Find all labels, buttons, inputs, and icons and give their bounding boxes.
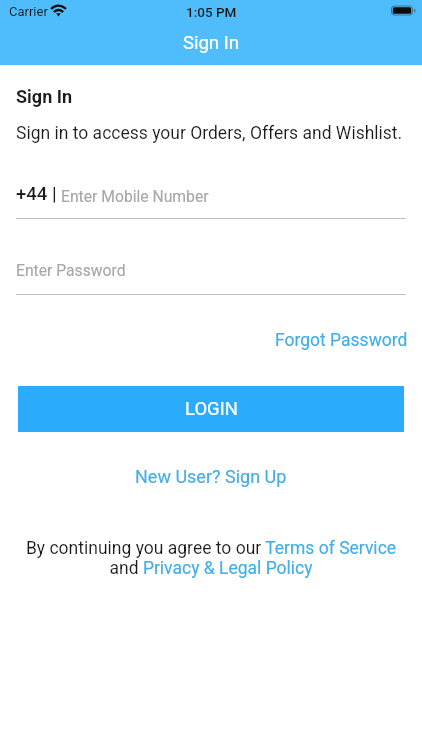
button[interactable]: LOGIN [18,386,404,432]
button[interactable]: Forgot Password [264,325,410,355]
other: Wi-Fi signal [51,5,67,17]
staticText: Sign In [183,32,239,54]
staticText: LOGIN [185,398,238,420]
button[interactable]: Enter Password [16,256,406,295]
staticText: New User? Sign Up [135,466,287,487]
staticText: Sign In [16,86,73,107]
staticText: Carrier [9,4,48,19]
button[interactable]: By continuing you agree to our Terms of … [0,538,422,578]
staticText: Enter Password [16,261,126,279]
staticText: Forgot Password [275,330,408,351]
staticText: Enter Mobile Number [61,187,209,205]
staticText: +44 [16,183,48,205]
other: Battery full [391,5,416,16]
button[interactable]: New User? Sign Up [126,461,296,491]
button[interactable]: +44 [16,178,406,219]
staticText: Sign in to access your Orders, Offers an… [16,123,403,144]
staticText: 1:05 PM [186,4,237,20]
staticText: | [52,183,57,205]
